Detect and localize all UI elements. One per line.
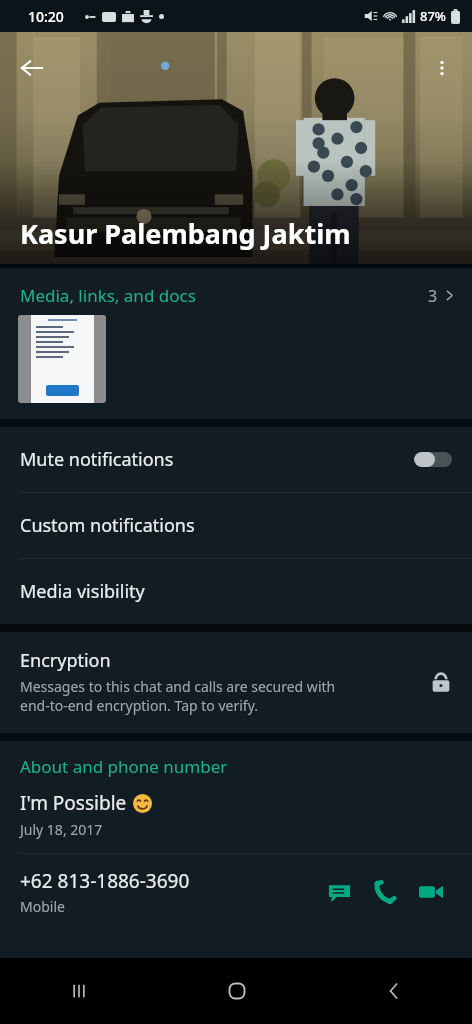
staticText: Encryption xyxy=(20,648,111,673)
staticText: About and phone number xyxy=(20,755,228,778)
button[interactable] xyxy=(18,315,106,403)
button[interactable]: Recent apps xyxy=(0,958,158,1024)
button[interactable]: Custom notifications xyxy=(0,493,472,558)
staticText: Kasur Palembang Jaktim xyxy=(20,215,351,252)
staticText: 3 xyxy=(428,285,438,307)
button[interactable]: Mute notifications xyxy=(0,427,472,492)
staticText: 10:20 xyxy=(28,7,64,26)
button[interactable]: More options xyxy=(420,46,464,90)
staticText: Media visibility xyxy=(20,579,145,604)
staticText: I'm Possible xyxy=(20,790,127,816)
button[interactable]: I'm Possible xyxy=(0,790,472,853)
staticText: July 18, 2017 xyxy=(20,820,103,839)
staticText: +62 813-1886-3690 xyxy=(20,868,190,894)
button[interactable]: Media, links, and docs xyxy=(0,268,472,315)
button[interactable]: Home xyxy=(158,958,315,1024)
button[interactable]: Video call xyxy=(408,869,454,915)
button[interactable]: Encryption xyxy=(0,632,472,733)
button[interactable]: Media visibility xyxy=(0,559,472,624)
button[interactable]: +62 813-1886-3690 xyxy=(20,868,316,916)
staticText: Custom notifications xyxy=(20,513,195,538)
button[interactable]: Back xyxy=(10,46,54,90)
staticText: 87% xyxy=(420,7,446,25)
staticText: Messages to this chat and calls are secu… xyxy=(20,677,336,715)
button[interactable]: Call xyxy=(362,869,408,915)
staticText: Mobile xyxy=(20,897,65,916)
staticText: Media, links, and docs xyxy=(20,284,196,307)
button[interactable]: Back xyxy=(315,958,472,1024)
button[interactable]: Message xyxy=(316,869,362,915)
staticText: Mute notifications xyxy=(20,447,174,472)
